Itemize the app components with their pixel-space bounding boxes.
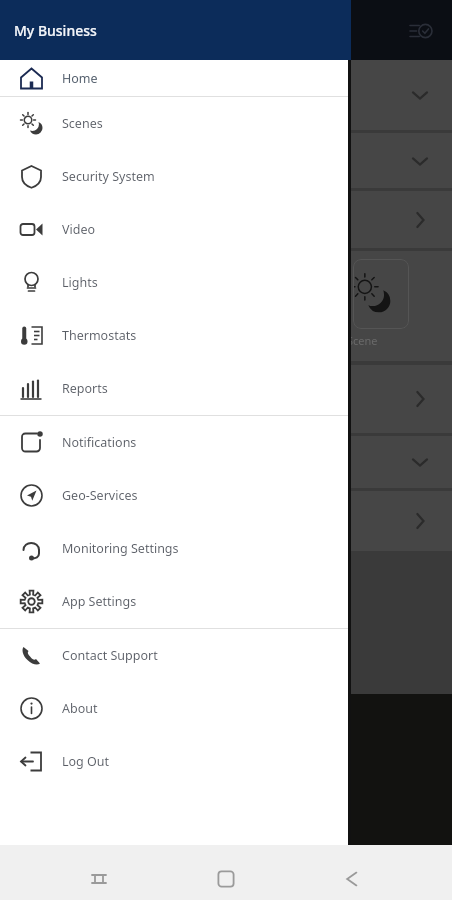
staticText: My Business	[14, 21, 97, 40]
button[interactable]: Home	[0, 60, 351, 96]
button[interactable]: Reports	[0, 362, 351, 415]
button[interactable]: App Settings	[0, 575, 351, 628]
staticText: Security System	[62, 168, 155, 185]
staticText: Notifications	[62, 434, 137, 451]
staticText: Geo-Services	[62, 487, 138, 504]
staticText: Scenes	[62, 115, 103, 132]
button[interactable]: Contact Support	[0, 629, 351, 682]
staticText: Contact Support	[62, 647, 158, 664]
button[interactable]: Monitoring Settings	[0, 522, 351, 575]
staticText: Lights	[62, 274, 98, 291]
button[interactable]: Lights	[0, 256, 351, 309]
button[interactable]: Tasks	[404, 14, 438, 48]
staticText: Reports	[62, 380, 108, 397]
staticText: Log Out	[62, 753, 110, 770]
button[interactable]: Recents	[75, 855, 123, 900]
staticText: Video	[62, 221, 96, 238]
staticText: About	[62, 700, 98, 717]
button[interactable]: Video	[0, 203, 351, 256]
staticText: Scene	[347, 333, 378, 348]
button[interactable]: Back	[328, 855, 376, 900]
staticText: Thermostats	[62, 327, 137, 344]
staticText: App Settings	[62, 593, 137, 610]
button[interactable]: Home	[202, 855, 250, 900]
button[interactable]: Security System	[0, 150, 351, 203]
button[interactable]: Geo-Services	[0, 469, 351, 522]
button[interactable]: Log Out	[0, 735, 351, 788]
staticText: Monitoring Settings	[62, 540, 179, 557]
button[interactable]: Notifications	[0, 416, 351, 469]
button[interactable]: About	[0, 682, 351, 735]
button[interactable]: Thermostats	[0, 309, 351, 362]
staticText: Home	[62, 70, 98, 87]
button[interactable]: Scenes	[0, 97, 351, 150]
